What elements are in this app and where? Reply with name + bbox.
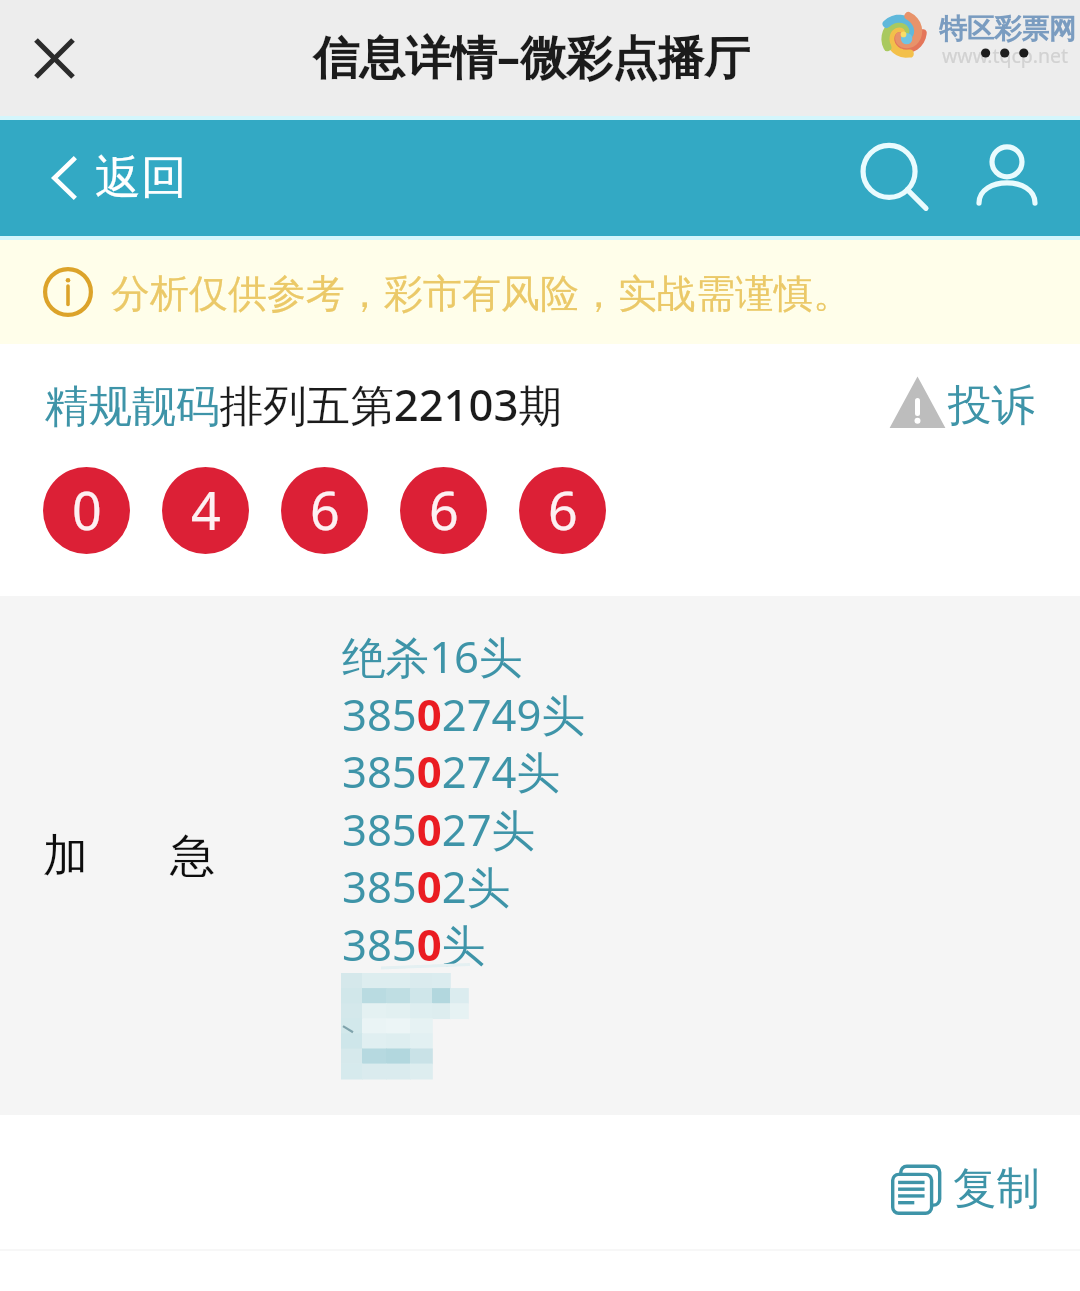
button[interactable]: 复制 bbox=[890, 1162, 1041, 1217]
staticText: 信息详情–微彩点播厅 bbox=[313, 25, 750, 88]
staticText: 385027头 bbox=[342, 799, 536, 859]
staticText: 加 急 bbox=[43, 823, 215, 884]
button[interactable]: Close bbox=[22, 26, 86, 90]
staticText: 绝杀16头 bbox=[342, 626, 523, 686]
button[interactable]: 6 bbox=[519, 467, 606, 554]
staticText: 3850头 bbox=[342, 914, 486, 974]
button[interactable]: 6 bbox=[400, 467, 487, 554]
button[interactable]: 6 bbox=[281, 467, 368, 554]
staticText: 6 bbox=[548, 474, 578, 545]
button[interactable]: Account bbox=[970, 141, 1044, 215]
staticText: 4 bbox=[191, 474, 221, 545]
button[interactable]: Search bbox=[858, 141, 932, 215]
staticText: 0 bbox=[72, 474, 102, 545]
staticText: 特区彩票网 bbox=[939, 12, 1077, 47]
staticText: www.tqcp.net bbox=[942, 42, 1069, 69]
staticText: 6 bbox=[429, 474, 459, 545]
staticText: 精规靓码排列五第22103期 bbox=[45, 374, 563, 434]
staticText: 分析仅供参考，彩市有风险，实战需谨慎。 bbox=[111, 269, 852, 318]
button[interactable]: 返回 bbox=[44, 139, 195, 217]
staticText: 复制 bbox=[953, 1161, 1041, 1216]
button[interactable]: 4 bbox=[162, 467, 249, 554]
staticText: 38502头 bbox=[342, 856, 511, 916]
button[interactable]: 0 bbox=[43, 467, 130, 554]
button[interactable]: 投诉 bbox=[893, 377, 1036, 432]
staticText: 3850274头 bbox=[342, 741, 561, 801]
staticText: 6 bbox=[310, 474, 340, 545]
staticText: 返回 bbox=[95, 149, 187, 207]
staticText: 38502749头 bbox=[342, 684, 586, 744]
staticText: 投诉 bbox=[948, 378, 1036, 433]
